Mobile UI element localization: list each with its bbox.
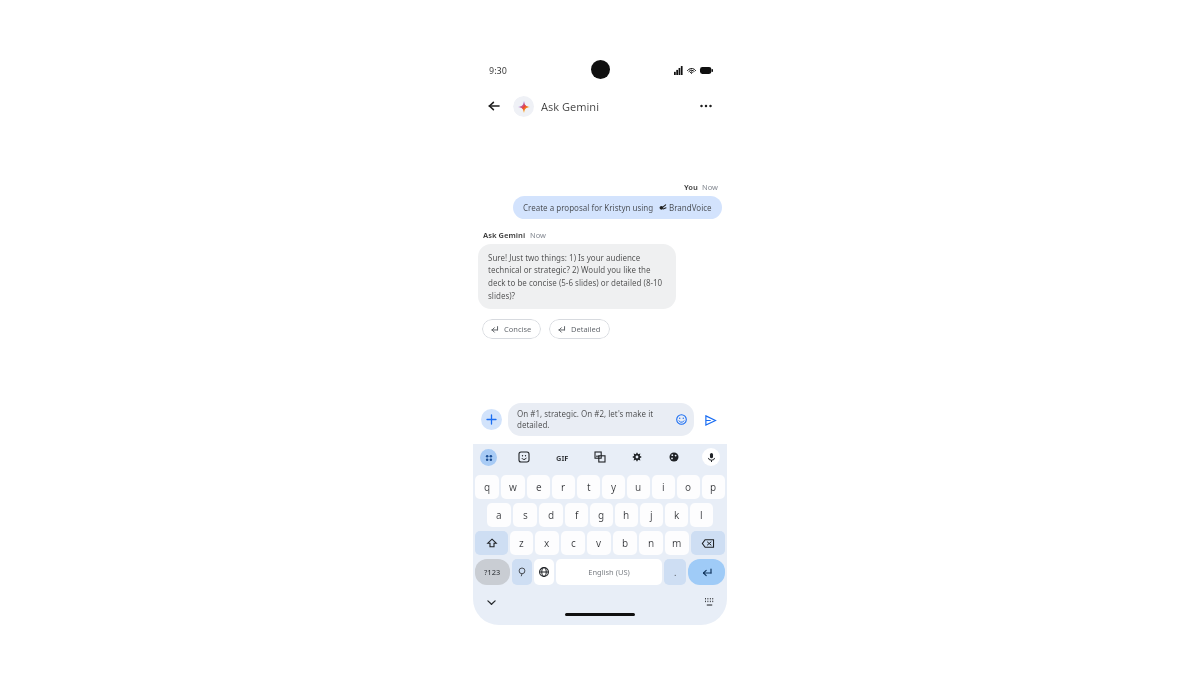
staticText: y: [611, 480, 617, 494]
staticText: You: [684, 182, 698, 192]
button[interactable]: l: [690, 503, 713, 527]
staticText: 9:30: [489, 64, 507, 76]
button[interactable]: On #1, strategic. On #2, let's make it d…: [508, 403, 694, 436]
button[interactable]: Emoji key: [512, 559, 532, 585]
button[interactable]: Add attachment: [481, 409, 502, 430]
staticText: c: [571, 536, 576, 550]
staticText: h: [623, 508, 630, 522]
staticText: k: [674, 508, 680, 522]
button[interactable]: Shift: [475, 531, 508, 555]
button[interactable]: s: [513, 503, 537, 527]
staticText: Now: [530, 230, 546, 240]
button[interactable]: Translate: [591, 448, 609, 466]
button[interactable]: Sure! Just two things: 1) Is your audien…: [478, 244, 676, 309]
button[interactable]: v: [587, 531, 611, 555]
button[interactable]: Create a proposal for Kristyn using: [513, 196, 722, 219]
button[interactable]: Hide keyboard: [483, 594, 499, 610]
button[interactable]: Emoji: [675, 413, 688, 426]
staticText: ?123: [484, 567, 501, 577]
staticText: Concise: [504, 324, 532, 334]
staticText: Sure! Just two things: 1) Is your audien…: [488, 252, 666, 301]
button[interactable]: Settings: [628, 448, 646, 466]
button[interactable]: English (US): [556, 559, 662, 585]
staticText: English (US): [588, 567, 630, 577]
staticText: z: [519, 536, 524, 550]
button[interactable]: Enter: [688, 559, 725, 585]
button[interactable]: o: [677, 475, 700, 499]
button[interactable]: Detailed: [549, 319, 610, 339]
button[interactable]: i: [652, 475, 675, 499]
staticText: Ask Gemini: [541, 99, 600, 114]
button[interactable]: Change language: [534, 559, 554, 585]
button[interactable]: Send: [701, 411, 719, 429]
button[interactable]: Ask Gemini: [513, 96, 600, 117]
button[interactable]: z: [510, 531, 533, 555]
staticText: f: [575, 508, 579, 522]
button[interactable]: h: [615, 503, 638, 527]
button[interactable]: Voice input: [702, 448, 720, 466]
staticText: Now: [702, 182, 718, 192]
staticText: d: [548, 508, 555, 522]
button[interactable]: t: [577, 475, 600, 499]
staticText: Create a proposal for Kristyn using: [523, 202, 654, 213]
staticText: On #1, strategic. On #2, let's make it d…: [517, 408, 671, 431]
staticText: b: [622, 536, 629, 550]
staticText: p: [710, 480, 717, 494]
staticText: u: [635, 480, 642, 494]
button[interactable]: b: [613, 531, 637, 555]
staticText: t: [587, 480, 591, 494]
staticText: BrandVoice: [669, 202, 712, 213]
button[interactable]: Theme: [665, 448, 683, 466]
staticText: a: [496, 508, 502, 522]
button[interactable]: x: [535, 531, 559, 555]
button[interactable]: e: [527, 475, 550, 499]
staticText: .: [674, 566, 677, 578]
button[interactable]: y: [602, 475, 625, 499]
button[interactable]: p: [702, 475, 725, 499]
button[interactable]: c: [561, 531, 585, 555]
button[interactable]: w: [501, 475, 525, 499]
staticText: n: [648, 536, 655, 550]
button[interactable]: j: [640, 503, 663, 527]
button[interactable]: Concise: [482, 319, 541, 339]
button[interactable]: q: [475, 475, 499, 499]
button[interactable]: u: [627, 475, 650, 499]
staticText: j: [650, 508, 653, 522]
button[interactable]: Backspace: [691, 531, 725, 555]
button[interactable]: Switch keyboard: [701, 594, 717, 610]
button[interactable]: Back: [483, 95, 505, 117]
staticText: o: [685, 480, 692, 494]
button[interactable]: a: [487, 503, 511, 527]
staticText: Detailed: [571, 324, 601, 334]
staticText: l: [700, 508, 703, 522]
button[interactable]: Apps: [480, 449, 497, 466]
staticText: v: [596, 536, 602, 550]
staticText: r: [561, 480, 566, 494]
staticText: m: [672, 536, 682, 550]
button[interactable]: Stickers: [515, 448, 533, 466]
button[interactable]: GIF: [552, 449, 572, 466]
staticText: x: [544, 536, 550, 550]
button[interactable]: m: [665, 531, 689, 555]
button[interactable]: r: [552, 475, 575, 499]
staticText: i: [662, 480, 665, 494]
button[interactable]: f: [565, 503, 588, 527]
button[interactable]: .: [664, 559, 686, 585]
button[interactable]: g: [590, 503, 613, 527]
button[interactable]: More options: [695, 95, 717, 117]
staticText: Ask Gemini: [483, 230, 526, 240]
staticText: w: [509, 480, 517, 494]
staticText: GIF: [556, 453, 569, 463]
button[interactable]: d: [539, 503, 563, 527]
button[interactable]: n: [639, 531, 663, 555]
staticText: e: [536, 480, 542, 494]
button[interactable]: ?123: [475, 559, 510, 585]
staticText: q: [484, 480, 491, 494]
staticText: g: [598, 508, 605, 522]
button[interactable]: k: [665, 503, 688, 527]
staticText: s: [523, 508, 528, 522]
